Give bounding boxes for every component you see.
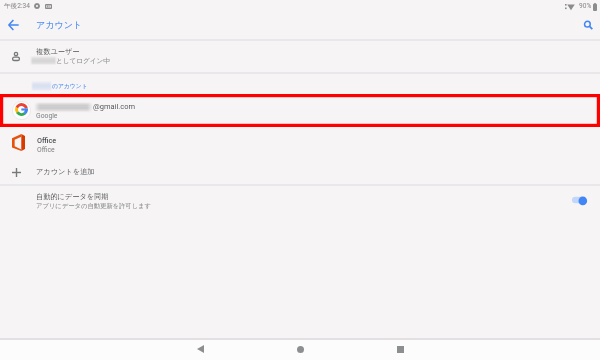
button[interactable]: Back xyxy=(1,12,26,37)
button[interactable]: 複数ユーザー xyxy=(0,40,600,72)
staticText: 複数ユーザー xyxy=(36,47,80,56)
button[interactable]: Recent apps xyxy=(376,338,424,360)
staticText: @gmail.com xyxy=(93,102,136,111)
staticText: アカウントを追加 xyxy=(36,167,95,176)
button[interactable]: @gmail.com xyxy=(0,94,600,126)
staticText: アプリにデータの自動更新を許可します xyxy=(36,202,151,210)
button[interactable]: 自動的にデータを同期 xyxy=(0,185,600,217)
button[interactable]: アカウントを追加 xyxy=(0,158,600,184)
button[interactable]: Auto sync data toggle xyxy=(568,189,592,211)
button[interactable]: Search xyxy=(576,13,600,38)
staticText: 午後2:34 xyxy=(4,2,30,10)
staticText: Office xyxy=(37,146,55,154)
staticText: のアカウント xyxy=(52,82,88,89)
staticText: Google xyxy=(36,112,58,120)
button[interactable]: Office xyxy=(0,126,600,158)
button[interactable]: Back xyxy=(176,338,224,360)
staticText: としてログイン中 xyxy=(56,57,110,65)
staticText: 自動的にデータを同期 xyxy=(36,192,109,201)
staticText: アカウント xyxy=(36,19,83,30)
staticText: Office xyxy=(37,136,57,145)
staticText: 90% xyxy=(579,2,592,10)
button[interactable]: Home xyxy=(276,338,324,360)
